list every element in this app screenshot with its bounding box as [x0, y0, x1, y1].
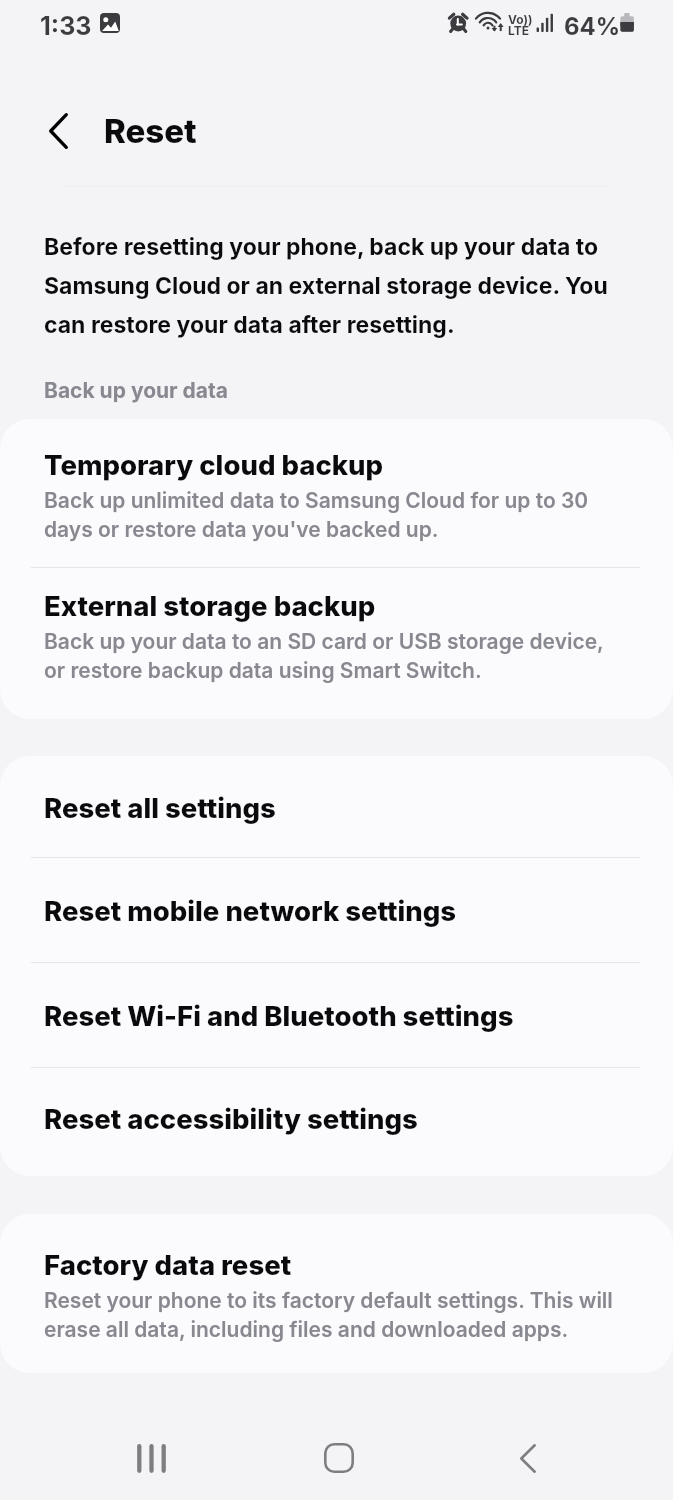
staticText: Temporary cloud backup: [44, 451, 384, 481]
staticText: Reset all settings: [44, 794, 276, 824]
staticText: External storage backup: [44, 592, 376, 622]
button[interactable]: Back: [488, 1418, 568, 1498]
button[interactable]: Navigate up: [26, 99, 90, 163]
staticText: 1:33: [40, 11, 92, 41]
staticText: 64%: [564, 12, 621, 41]
button[interactable]: Reset all settings: [0, 756, 673, 857]
button[interactable]: Home: [299, 1418, 379, 1498]
staticText: Factory data reset: [44, 1251, 292, 1281]
button[interactable]: Factory data reset: [0, 1214, 673, 1373]
staticText: Reset Wi-Fi and Bluetooth settings: [44, 1002, 514, 1032]
staticText: Reset accessibility settings: [44, 1105, 418, 1135]
button[interactable]: Reset Wi-Fi and Bluetooth settings: [0, 963, 673, 1067]
staticText: Reset your phone to its factory default …: [44, 1285, 620, 1343]
button[interactable]: Reset accessibility settings: [0, 1068, 673, 1176]
button[interactable]: Reset mobile network settings: [0, 858, 673, 962]
button[interactable]: Temporary cloud backup: [0, 419, 673, 567]
button[interactable]: Recent apps: [111, 1418, 191, 1498]
staticText: LTE: [508, 23, 529, 38]
staticText: Reset: [104, 114, 197, 150]
staticText: Before resetting your phone, back up you…: [44, 224, 629, 341]
staticText: Back up your data to an SD card or USB s…: [44, 626, 620, 684]
staticText: Vo)): [508, 12, 533, 27]
staticText: Reset mobile network settings: [44, 897, 457, 927]
staticText: Back up your data: [44, 379, 229, 403]
staticText: Back up unlimited data to Samsung Cloud …: [44, 485, 620, 543]
button[interactable]: External storage backup: [0, 568, 673, 719]
